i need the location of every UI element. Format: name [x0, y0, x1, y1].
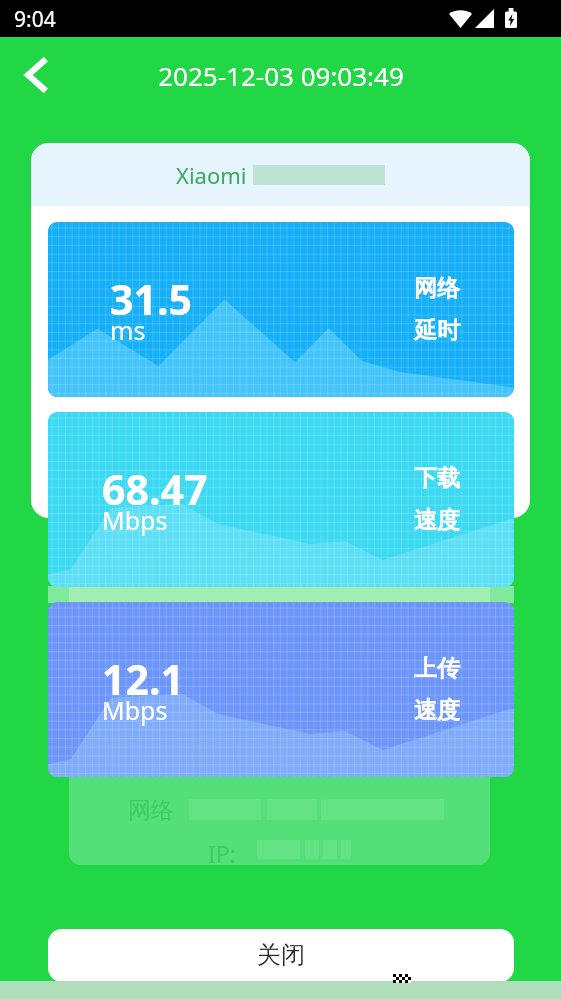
staticText: 9:04	[14, 5, 56, 34]
staticText: 31.5	[110, 271, 192, 327]
staticText: Xiaomi	[176, 160, 253, 190]
staticText: IP:	[208, 838, 236, 869]
button[interactable]: 12.1	[48, 602, 514, 777]
button[interactable]: 31.5	[48, 222, 514, 397]
staticText: 延时	[414, 316, 460, 345]
staticText: 网络	[414, 274, 460, 303]
staticText: 速度	[414, 696, 460, 725]
staticText: 下载	[414, 464, 460, 493]
staticText: 12.1	[102, 651, 184, 707]
staticText: 关闭	[257, 940, 305, 970]
staticText: 2025-12-03 09:03:49	[158, 58, 404, 93]
button[interactable]: 68.47	[48, 412, 514, 587]
button[interactable]: Back	[12, 50, 62, 100]
staticText: 上传	[414, 654, 460, 683]
staticText: Mbps	[102, 693, 168, 727]
staticText: 网络	[128, 796, 174, 825]
staticText: 68.47	[102, 461, 208, 517]
staticText: 速度	[414, 506, 460, 535]
button[interactable]: 关闭	[48, 929, 514, 982]
staticText: Mbps	[102, 503, 168, 537]
staticText: ms	[110, 313, 146, 347]
